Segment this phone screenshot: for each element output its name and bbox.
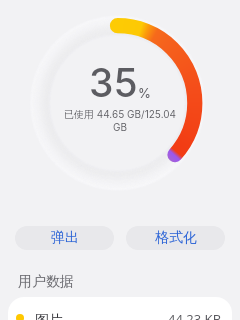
staticText: 已使用 44.65 GB/125.04 GB <box>50 108 190 133</box>
staticText: 35 <box>89 59 138 106</box>
button[interactable]: 格式化 <box>126 226 225 250</box>
button[interactable]: 弹出 <box>15 226 114 250</box>
staticText: % <box>138 85 151 101</box>
staticText: 44.23 KB <box>168 310 222 320</box>
staticText: 用户数据 <box>18 273 74 291</box>
staticText: 格式化 <box>155 229 197 247</box>
button[interactable]: 图片 <box>8 297 232 320</box>
staticText: 弹出 <box>51 229 79 247</box>
staticText: 图片 <box>35 312 63 320</box>
